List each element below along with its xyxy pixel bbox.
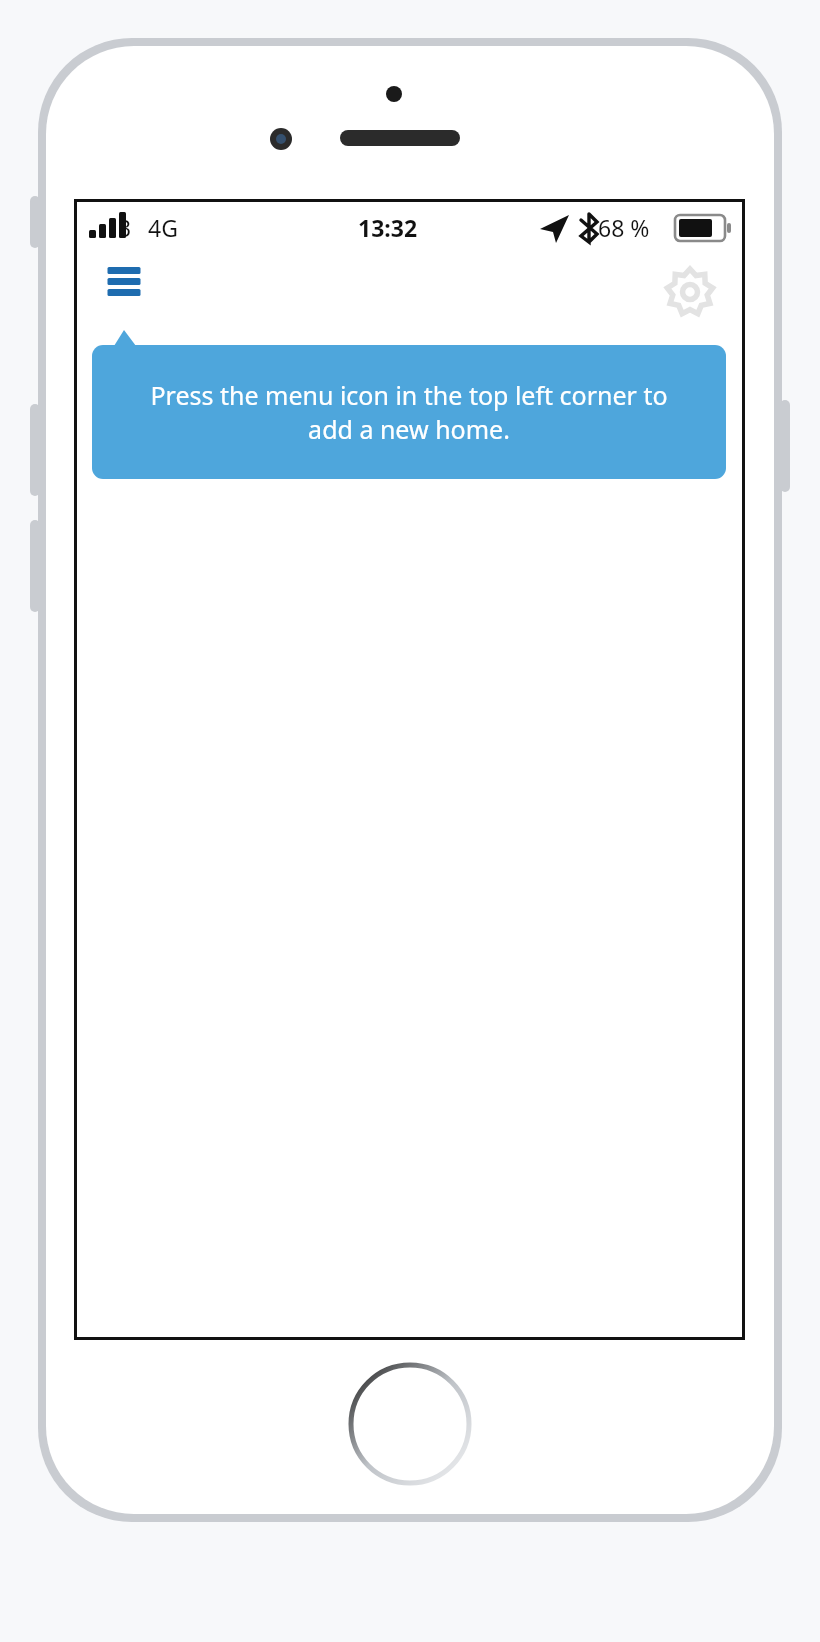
staticText: 4G [148, 212, 178, 243]
staticText: 68 % [598, 212, 650, 243]
staticText: Press the menu icon in the top left corn… [139, 378, 679, 446]
button[interactable]: Settings [662, 264, 718, 320]
staticText: 3 [118, 212, 132, 243]
button[interactable]: Menu [94, 254, 154, 306]
staticText: 13:32 [358, 212, 418, 243]
button[interactable]: Press the menu icon in the top left corn… [92, 345, 726, 479]
